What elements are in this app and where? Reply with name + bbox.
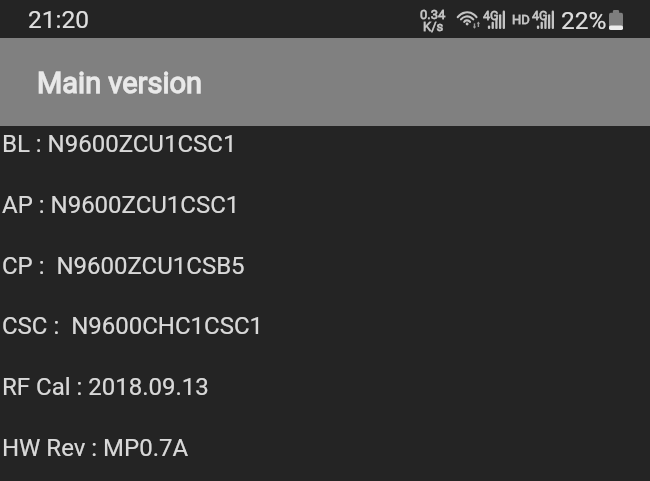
staticText: 4G (532, 8, 548, 23)
staticText: 0.34 (420, 7, 446, 22)
button[interactable]: AP : N9600ZCU1CSC1 (0, 187, 650, 248)
staticText: BL : N9600ZCU1CSC1 (2, 130, 237, 158)
button[interactable]: HW Rev : MP0.7A (0, 430, 650, 481)
button[interactable]: BL : N9600ZCU1CSC1 (0, 126, 650, 187)
staticText: AP : N9600ZCU1CSC1 (2, 191, 240, 219)
button[interactable]: CSC : N9600CHC1CSC1 (0, 308, 650, 369)
button[interactable]: CP : N9600ZCU1CSB5 (0, 248, 650, 309)
staticText: RF Cal : 2018.09.13 (2, 373, 209, 401)
staticText: 22% (561, 6, 607, 35)
staticText: HD (512, 12, 530, 27)
other: Battery 22 percent (609, 10, 623, 30)
other: 4G signal strength (482, 8, 505, 29)
staticText: 21:20 (28, 5, 90, 34)
staticText: HW Rev : MP0.7A (2, 434, 189, 462)
button[interactable]: RF Cal : 2018.09.13 (0, 369, 650, 430)
other: Wi-Fi connected (457, 10, 480, 27)
staticText: 4G (483, 8, 499, 23)
staticText: CP : N9600ZCU1CSB5 (2, 252, 245, 280)
staticText: CSC : N9600CHC1CSC1 (2, 312, 264, 340)
staticText: Main version (37, 66, 202, 100)
other: 4G signal strength (531, 8, 554, 29)
staticText: K/s (423, 19, 444, 34)
